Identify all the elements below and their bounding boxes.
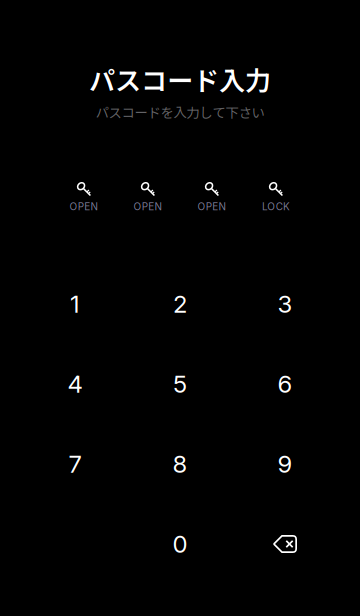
staticText: 0 [172, 529, 187, 558]
button[interactable]: OPEN [59, 181, 109, 211]
button[interactable]: 3 [232, 264, 337, 344]
staticText: 5 [173, 369, 187, 398]
staticText: 2 [173, 289, 187, 318]
button[interactable]: 9 [232, 424, 337, 504]
staticText: OPEN [69, 200, 99, 213]
button[interactable]: 4 [22, 344, 127, 424]
staticText: 6 [277, 369, 292, 398]
staticText: OPEN [197, 200, 227, 213]
button[interactable]: 1 [22, 264, 127, 344]
staticText: 7 [68, 449, 81, 478]
staticText: パスコードを入力して下さい [95, 102, 264, 122]
staticText: 9 [277, 449, 292, 478]
staticText: 8 [172, 449, 187, 478]
staticText: 3 [277, 289, 292, 318]
button[interactable]: 0 [127, 504, 232, 584]
button[interactable]: 8 [127, 424, 232, 504]
staticText: OPEN [133, 200, 163, 213]
button[interactable]: OPEN [187, 181, 237, 211]
button[interactable]: 5 [127, 344, 232, 424]
button[interactable]: 7 [22, 424, 127, 504]
staticText: 4 [67, 369, 82, 398]
staticText: LOCK [262, 200, 290, 213]
button[interactable]: LOCK [251, 181, 301, 211]
button[interactable]: 6 [232, 344, 337, 424]
button[interactable]: OPEN [123, 181, 173, 211]
button[interactable]: Delete [232, 504, 337, 584]
staticText: 1 [70, 289, 80, 318]
button[interactable]: 2 [127, 264, 232, 344]
staticText: パスコード入力 [89, 60, 271, 98]
